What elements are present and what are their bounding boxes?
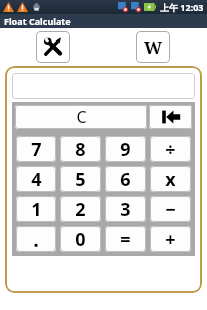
staticText: 1 (31, 197, 42, 222)
staticText: ÷ (165, 137, 176, 162)
staticText: = (120, 227, 131, 252)
staticText: . (33, 226, 39, 252)
staticText: 2 (75, 197, 86, 222)
staticText: C (76, 106, 87, 128)
button[interactable]: + (150, 226, 191, 252)
staticText: 7 (31, 137, 42, 162)
button[interactable] (12, 73, 195, 99)
button[interactable]: 7 (16, 136, 56, 162)
staticText: 6 (120, 167, 131, 192)
button[interactable]: ÷ (150, 136, 191, 162)
button[interactable]: 0 (60, 226, 101, 252)
staticText: 3 (120, 197, 131, 222)
staticText: 9 (120, 137, 131, 162)
staticText: x (165, 167, 176, 192)
button[interactable]: 4 (16, 166, 56, 192)
button[interactable]: Backspace (149, 105, 192, 129)
button[interactable]: 3 (105, 196, 146, 222)
staticText: 4 (31, 167, 42, 192)
staticText: 8 (75, 137, 86, 162)
button[interactable]: . (16, 226, 56, 252)
staticText: 5 (75, 167, 86, 192)
staticText: 上午 12:03 (160, 1, 204, 13)
button[interactable]: 5 (60, 166, 101, 192)
staticText: W (144, 36, 163, 59)
button[interactable]: 8 (60, 136, 101, 162)
button[interactable]: W (136, 31, 170, 63)
staticText: − (165, 197, 176, 222)
staticText: + (165, 227, 176, 252)
staticText: Float Calculate (4, 15, 71, 27)
button[interactable]: 1 (16, 196, 56, 222)
button[interactable]: 2 (60, 196, 101, 222)
button[interactable]: = (105, 226, 146, 252)
staticText: 0 (75, 227, 86, 252)
button[interactable]: Settings tools (36, 31, 70, 63)
button[interactable]: − (150, 196, 191, 222)
button[interactable]: C (15, 105, 147, 129)
button[interactable]: 6 (105, 166, 146, 192)
button[interactable]: x (150, 166, 191, 192)
button[interactable]: 9 (105, 136, 146, 162)
